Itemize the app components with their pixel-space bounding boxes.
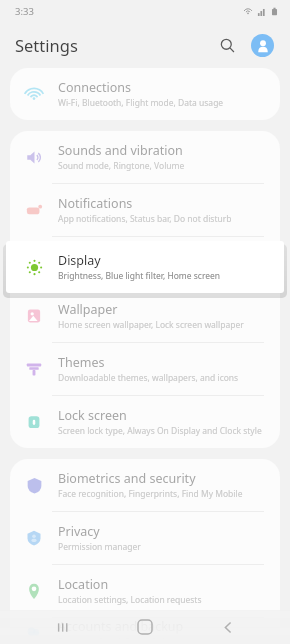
button[interactable]: Location <box>10 565 280 617</box>
staticText: 3:33 <box>15 5 34 18</box>
staticText: Sound mode, Ringtone, Volume <box>58 160 185 172</box>
staticText: Sounds and vibration <box>58 142 183 159</box>
staticText: App notifications, Status bar, Do not di… <box>58 213 232 225</box>
button[interactable]: Themes <box>10 343 280 395</box>
button[interactable]: Lock screen <box>10 396 280 448</box>
staticText: Wallpaper <box>58 301 118 318</box>
button[interactable]: Display <box>6 241 284 293</box>
button[interactable]: Home <box>125 610 165 644</box>
staticText: Permission manager <box>58 541 141 553</box>
staticText: Downloadable themes, wallpapers, and ico… <box>58 372 239 384</box>
button[interactable]: Notifications <box>10 184 280 236</box>
staticText: Lock screen <box>58 407 127 424</box>
button[interactable]: Sounds and vibration <box>10 131 280 183</box>
staticText: Face recognition, Fingerprints, Find My … <box>58 488 243 500</box>
staticText: Settings <box>15 34 78 56</box>
staticText: Wi-Fi, Bluetooth, Flight mode, Data usag… <box>58 97 224 109</box>
staticText: Display <box>58 252 101 269</box>
button[interactable]: Wallpaper <box>10 290 280 342</box>
staticText: Privacy <box>58 523 100 540</box>
staticText: Accounts and backup <box>58 618 184 635</box>
button[interactable]: Privacy <box>10 512 280 564</box>
staticText: Brightness, Blue light filter, Home scre… <box>58 270 221 282</box>
button[interactable]: Accounts and backup <box>10 618 280 644</box>
button[interactable]: Back <box>208 610 248 644</box>
staticText: Location settings, Location requests <box>58 594 202 606</box>
button[interactable]: Search <box>212 30 242 60</box>
staticText: Biometrics and security <box>58 470 196 487</box>
staticText: Location <box>58 576 109 593</box>
staticText: Themes <box>58 354 105 371</box>
button[interactable]: Recents <box>43 610 83 644</box>
staticText: Notifications <box>58 195 133 212</box>
button[interactable]: Connections <box>10 68 280 120</box>
button[interactable]: Biometrics and security <box>10 459 280 511</box>
staticText: Screen lock type, Always On Display and … <box>58 425 262 437</box>
staticText: Connections <box>58 79 131 96</box>
staticText: Home screen wallpaper, Lock screen wallp… <box>58 319 244 331</box>
button[interactable]: Account <box>246 29 278 61</box>
